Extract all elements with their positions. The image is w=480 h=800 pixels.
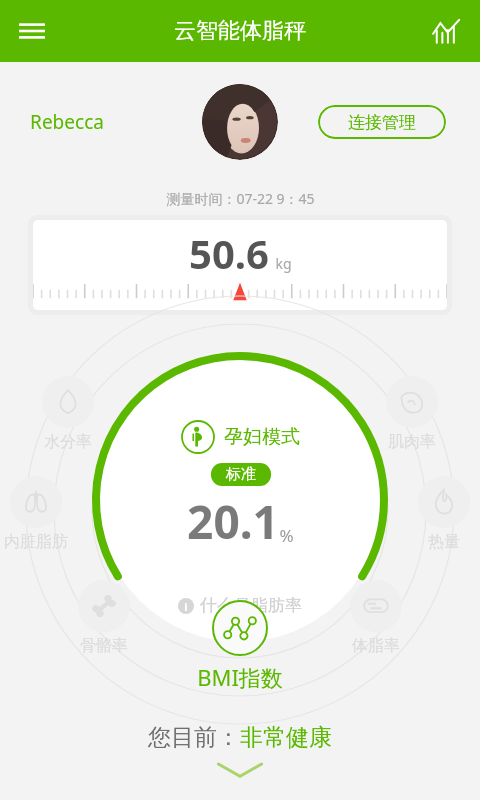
staticText: i [184, 599, 188, 614]
button[interactable]: 孕妇模式 [92, 352, 388, 648]
button[interactable]: Profile photo [202, 84, 278, 160]
staticText: 孕妇模式 [224, 425, 300, 449]
button[interactable]: 连接管理 [318, 105, 446, 139]
staticText: 云智能体脂秤 [174, 17, 306, 45]
button[interactable]: BMI指数 [197, 600, 283, 692]
staticText: % [279, 524, 294, 547]
staticText: 测量时间：07-22 9：45 [166, 189, 315, 208]
button[interactable]: i [178, 595, 302, 616]
button[interactable]: 肌肉率 [374, 376, 450, 452]
button[interactable]: 50.6 [33, 220, 447, 310]
staticText: Rebecca [30, 109, 104, 135]
staticText: 标准 [226, 465, 256, 484]
staticText: 20.1 [187, 490, 279, 553]
button[interactable]: 骨骼率 [66, 580, 142, 656]
staticText: 热量 [428, 532, 460, 552]
button[interactable]: 体脂率 [338, 580, 414, 656]
button[interactable]: Chart [422, 7, 470, 55]
staticText: 您目前： [148, 723, 240, 752]
button[interactable]: Expand [210, 760, 270, 782]
staticText: 非常健康 [240, 723, 332, 752]
staticText: 50.6 [189, 226, 269, 280]
staticText: 水分率 [44, 432, 92, 452]
staticText: 内脏脂肪 [4, 532, 68, 552]
button[interactable]: Menu [8, 7, 56, 55]
staticText: 体脂率 [352, 636, 400, 656]
staticText: kg [275, 254, 292, 273]
button[interactable]: 水分率 [30, 376, 106, 452]
button[interactable]: 热量 [406, 476, 480, 552]
staticText: 连接管理 [348, 112, 416, 133]
button[interactable]: 内脏脂肪 [0, 476, 74, 552]
staticText: BMI指数 [197, 662, 283, 692]
staticText: 肌肉率 [388, 432, 436, 452]
staticText: 什么是脂肪率 [200, 595, 302, 616]
staticText: 骨骼率 [80, 636, 128, 656]
